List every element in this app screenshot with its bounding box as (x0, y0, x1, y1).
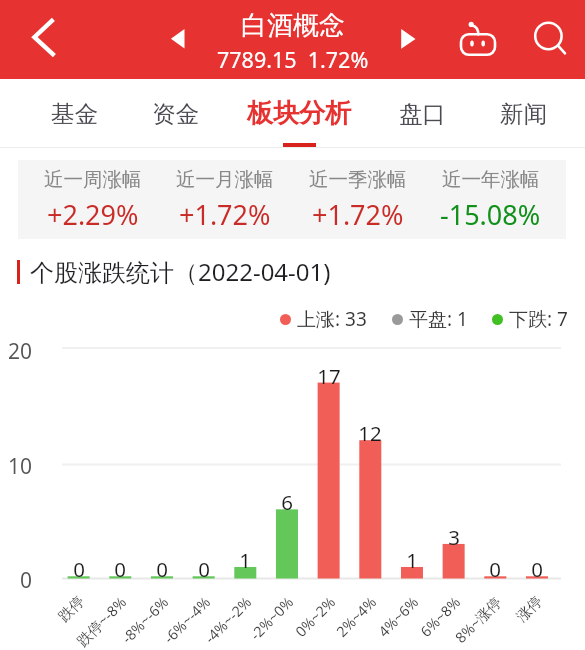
button[interactable]: 资金 (135, 79, 215, 147)
staticText: 3 (439, 523, 469, 551)
staticText: 1 (397, 546, 427, 574)
staticText: 平盘: 1 (409, 306, 468, 332)
button[interactable]: 板块分析 (239, 79, 359, 147)
staticText: 0 (105, 555, 135, 583)
staticText: 8%~涨停 (450, 592, 505, 647)
staticText: 跌停~-8% (71, 592, 130, 650)
button[interactable]: 基金 (34, 79, 114, 147)
staticText: 4%~6% (373, 592, 422, 641)
staticText: 0 (189, 555, 219, 583)
button[interactable]: 近一周涨幅 (27, 167, 159, 233)
staticText: 20 (0, 337, 32, 366)
staticText: 0 (0, 566, 32, 595)
staticText: -15.08% (440, 196, 541, 233)
staticText: 10 (0, 452, 32, 481)
button[interactable]: 平盘: 1 (392, 306, 468, 332)
button[interactable]: 盘口 (382, 79, 462, 147)
button[interactable]: Search (525, 13, 577, 65)
staticText: -2%~0% (245, 592, 297, 644)
staticText: 1 (230, 546, 260, 574)
staticText: +1.72% (179, 196, 271, 233)
staticText: 0 (64, 555, 94, 583)
staticText: 跌停 (54, 592, 88, 625)
staticText: 上涨: 33 (297, 306, 367, 332)
staticText: 新闻 (500, 99, 547, 129)
staticText: -4%~-2% (199, 592, 255, 648)
staticText: 17 (314, 362, 344, 390)
staticText: 盘口 (399, 99, 446, 129)
staticText: 白酒概念 (241, 9, 345, 42)
button[interactable]: Assistant (452, 13, 504, 65)
staticText: 6%~8% (415, 592, 464, 641)
staticText: 12 (355, 419, 385, 447)
staticText: 下跌: 7 (509, 306, 568, 332)
staticText: 0%~2% (290, 592, 339, 641)
staticText: 7789.15 1.72% (217, 45, 369, 74)
button[interactable]: 近一年涨幅 (424, 167, 557, 233)
staticText: 2%~4% (331, 592, 380, 641)
button[interactable]: 新闻 (483, 79, 563, 147)
button[interactable]: 近一季涨幅 (291, 167, 424, 233)
staticText: 6 (272, 488, 302, 516)
staticText: 基金 (51, 99, 98, 129)
staticText: 0 (147, 555, 177, 583)
button[interactable]: Previous sector (155, 16, 201, 62)
staticText: 资金 (152, 99, 199, 129)
button[interactable]: 近一月涨幅 (159, 167, 291, 233)
staticText: 近一季涨幅 (309, 167, 407, 192)
staticText: 近一月涨幅 (176, 167, 274, 192)
staticText: +1.72% (312, 196, 404, 233)
staticText: 近一周涨幅 (44, 167, 142, 192)
staticText: 0 (480, 555, 510, 583)
button[interactable]: 下跌: 7 (492, 306, 568, 332)
staticText: 近一年涨幅 (442, 167, 540, 192)
button[interactable]: Next sector (385, 16, 431, 62)
staticText: 个股涨跌统计（2022-04-01) (30, 255, 331, 288)
staticText: 板块分析 (247, 97, 351, 130)
staticText: 涨停 (512, 592, 546, 625)
staticText: 0 (522, 555, 552, 583)
staticText: +2.29% (47, 196, 139, 233)
button[interactable]: 上涨: 33 (280, 306, 367, 332)
button[interactable]: Back (12, 13, 68, 69)
staticText: -6%~-4% (158, 592, 214, 648)
staticText: -8%~-6% (116, 592, 172, 648)
